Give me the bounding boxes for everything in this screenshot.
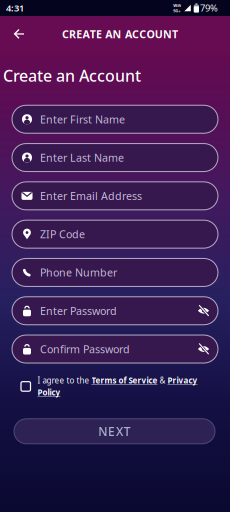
button[interactable]: Agree to terms xyxy=(21,382,30,391)
button[interactable]: I agree to the Terms of Service & Privac… xyxy=(37,375,219,398)
staticText: Enter Last Name xyxy=(40,150,124,165)
button[interactable]: Enter Email Address xyxy=(12,182,218,210)
button[interactable]: Enter Last Name xyxy=(12,143,218,171)
button[interactable]: ZIP Code xyxy=(12,220,218,248)
staticText: Enter Password xyxy=(40,304,117,318)
button[interactable]: Enter First Name xyxy=(12,105,218,133)
button[interactable]: Enter Password xyxy=(12,297,218,325)
staticText: 79% xyxy=(200,2,218,14)
staticText: Enter Email Address xyxy=(40,189,142,203)
staticText: Confirm Password xyxy=(40,342,130,356)
staticText: ZIP Code xyxy=(40,227,85,241)
staticText: Enter First Name xyxy=(40,112,125,126)
button[interactable]: Back xyxy=(0,21,24,47)
staticText: Phone Number xyxy=(40,265,117,280)
button[interactable]: Confirm Password xyxy=(12,335,218,363)
staticText: NEXT xyxy=(98,423,131,439)
button[interactable]: NEXT xyxy=(14,419,215,444)
button[interactable]: Phone Number xyxy=(12,258,218,286)
staticText: I agree to the Terms of Service & Privac… xyxy=(37,375,197,398)
staticText: CREATE AN ACCOUNT xyxy=(62,27,178,41)
staticText: Create an Account xyxy=(3,65,141,86)
staticText: 4:31 xyxy=(6,2,24,14)
staticText: Wifi 5G+ xyxy=(173,3,181,13)
